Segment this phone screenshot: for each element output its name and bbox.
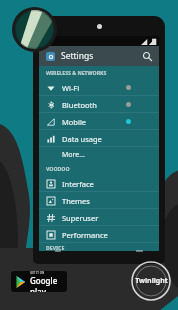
button[interactable]: More... [39, 147, 159, 162]
staticText: Interface [62, 179, 94, 189]
button[interactable]: Bluetooth [39, 96, 159, 113]
staticText: VOODOO [46, 165, 70, 172]
staticText: Google play [30, 275, 67, 292]
button[interactable]: GET IT ON [11, 271, 67, 292]
staticText: Superuser [62, 213, 99, 223]
staticText: Performance [62, 230, 108, 240]
button[interactable]: Wi-Fi [39, 79, 159, 96]
button[interactable]: Performance [39, 226, 159, 243]
staticText: Themes [62, 196, 90, 206]
staticText: WIRELESS & NETWORKS [46, 69, 107, 76]
button[interactable]: Themes [39, 192, 159, 209]
staticText: Wi-Fi [62, 83, 80, 93]
button[interactable]: Search [138, 47, 156, 65]
button[interactable]: Data usage [39, 130, 159, 147]
button[interactable]: Interface [39, 175, 159, 192]
staticText: Twinlight [135, 276, 168, 286]
button[interactable]: Settings [39, 46, 159, 66]
staticText: Settings [61, 50, 94, 62]
staticText: Mobile [62, 117, 87, 127]
staticText: DEVICE [46, 244, 65, 251]
staticText: More... [62, 150, 85, 160]
button[interactable]: App icon [12, 7, 57, 52]
staticText: GET IT ON [30, 271, 45, 275]
staticText: Data usage [62, 134, 102, 144]
staticText: Bluetooth [62, 100, 97, 110]
button[interactable]: Mobile [39, 113, 159, 130]
button[interactable]: Superuser [39, 209, 159, 226]
